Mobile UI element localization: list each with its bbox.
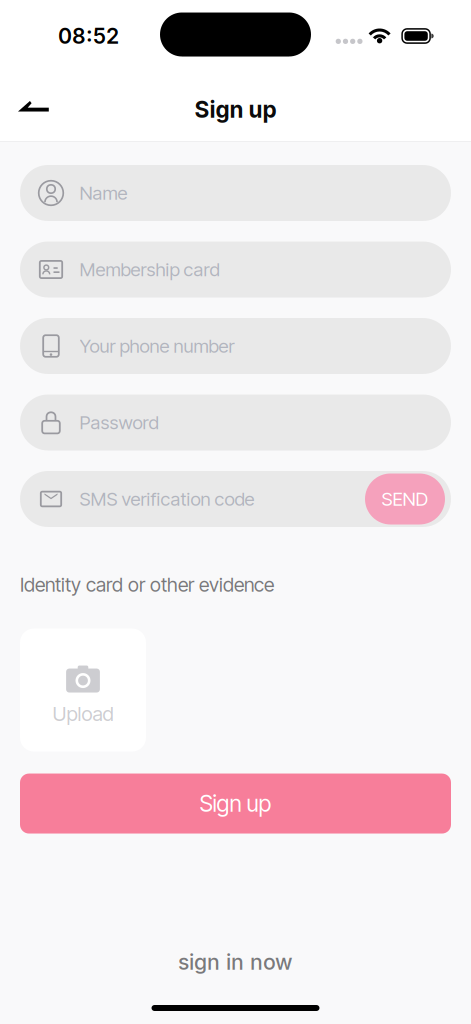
button[interactable]: sign in now	[178, 947, 293, 977]
staticText: SMS verification code	[79, 488, 254, 510]
staticText: Sign up	[194, 96, 276, 123]
button[interactable]: Sign up	[20, 774, 451, 834]
staticText: sign in now	[178, 949, 293, 975]
button[interactable]: Upload	[20, 629, 146, 752]
staticText: Upload	[52, 702, 113, 726]
staticText: Your phone number	[79, 335, 234, 357]
staticText: SEND	[381, 488, 428, 510]
staticText: Sign up	[199, 790, 271, 817]
staticText: Identity card or other evidence	[20, 573, 274, 597]
button[interactable]: Back	[6, 84, 61, 128]
staticText: Password	[79, 411, 158, 434]
staticText: Membership card	[79, 258, 219, 281]
staticText: 08:52	[58, 23, 119, 49]
button[interactable]: SEND	[365, 473, 445, 524]
staticText: Name	[79, 182, 127, 204]
